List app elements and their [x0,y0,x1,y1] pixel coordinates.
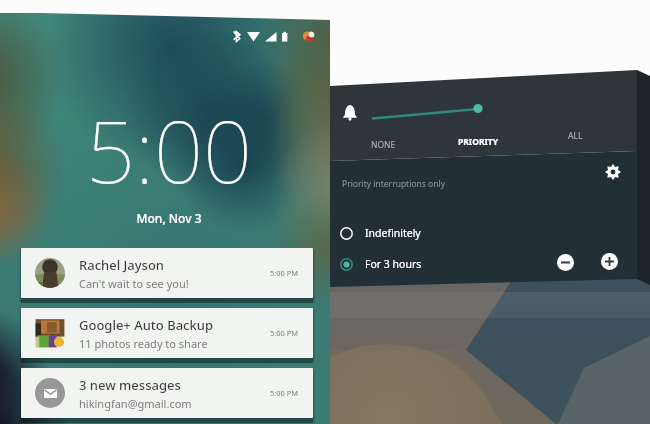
staticText: NONE [371,139,396,151]
staticText: 5:00 PM [270,268,299,278]
staticText: 5:00 PM [270,388,299,398]
staticText: hikingfan@gmail.com [79,396,192,411]
button[interactable]: Settings [601,160,625,184]
staticText: Indefinitely [365,226,421,240]
button[interactable]: 3 new messages [21,368,313,418]
staticText: Can't wait to see you! [79,276,189,291]
staticText: 5:00 [4,91,334,208]
button[interactable]: NONE [345,134,421,156]
staticText: Google+ Auto Backup [79,316,213,334]
staticText: Priority interruptions only [342,178,445,190]
staticText: ALL [568,130,583,142]
staticText: Rachel Jayson [79,256,165,274]
staticText: 3 new messages [79,376,181,394]
button[interactable]: Rachel Jayson [21,248,313,298]
button[interactable]: Google+ Auto Backup [21,308,313,358]
button[interactable]: For 3 hours [340,251,520,277]
button[interactable]: Indefinitely [340,220,520,246]
staticText: PRIORITY [458,136,498,148]
button[interactable]: Ringer volume [337,98,483,128]
button[interactable]: Account [302,30,315,43]
staticText: 11 photos ready to share [79,336,208,351]
staticText: 5:00 PM [270,328,299,338]
staticText: For 3 hours [365,257,422,271]
button[interactable]: Decrease [557,254,574,271]
button[interactable]: ALL [537,125,613,147]
staticText: Mon, Nov 3 [4,210,334,226]
button[interactable]: Increase [601,253,618,270]
button[interactable]: PRIORITY [440,131,516,153]
